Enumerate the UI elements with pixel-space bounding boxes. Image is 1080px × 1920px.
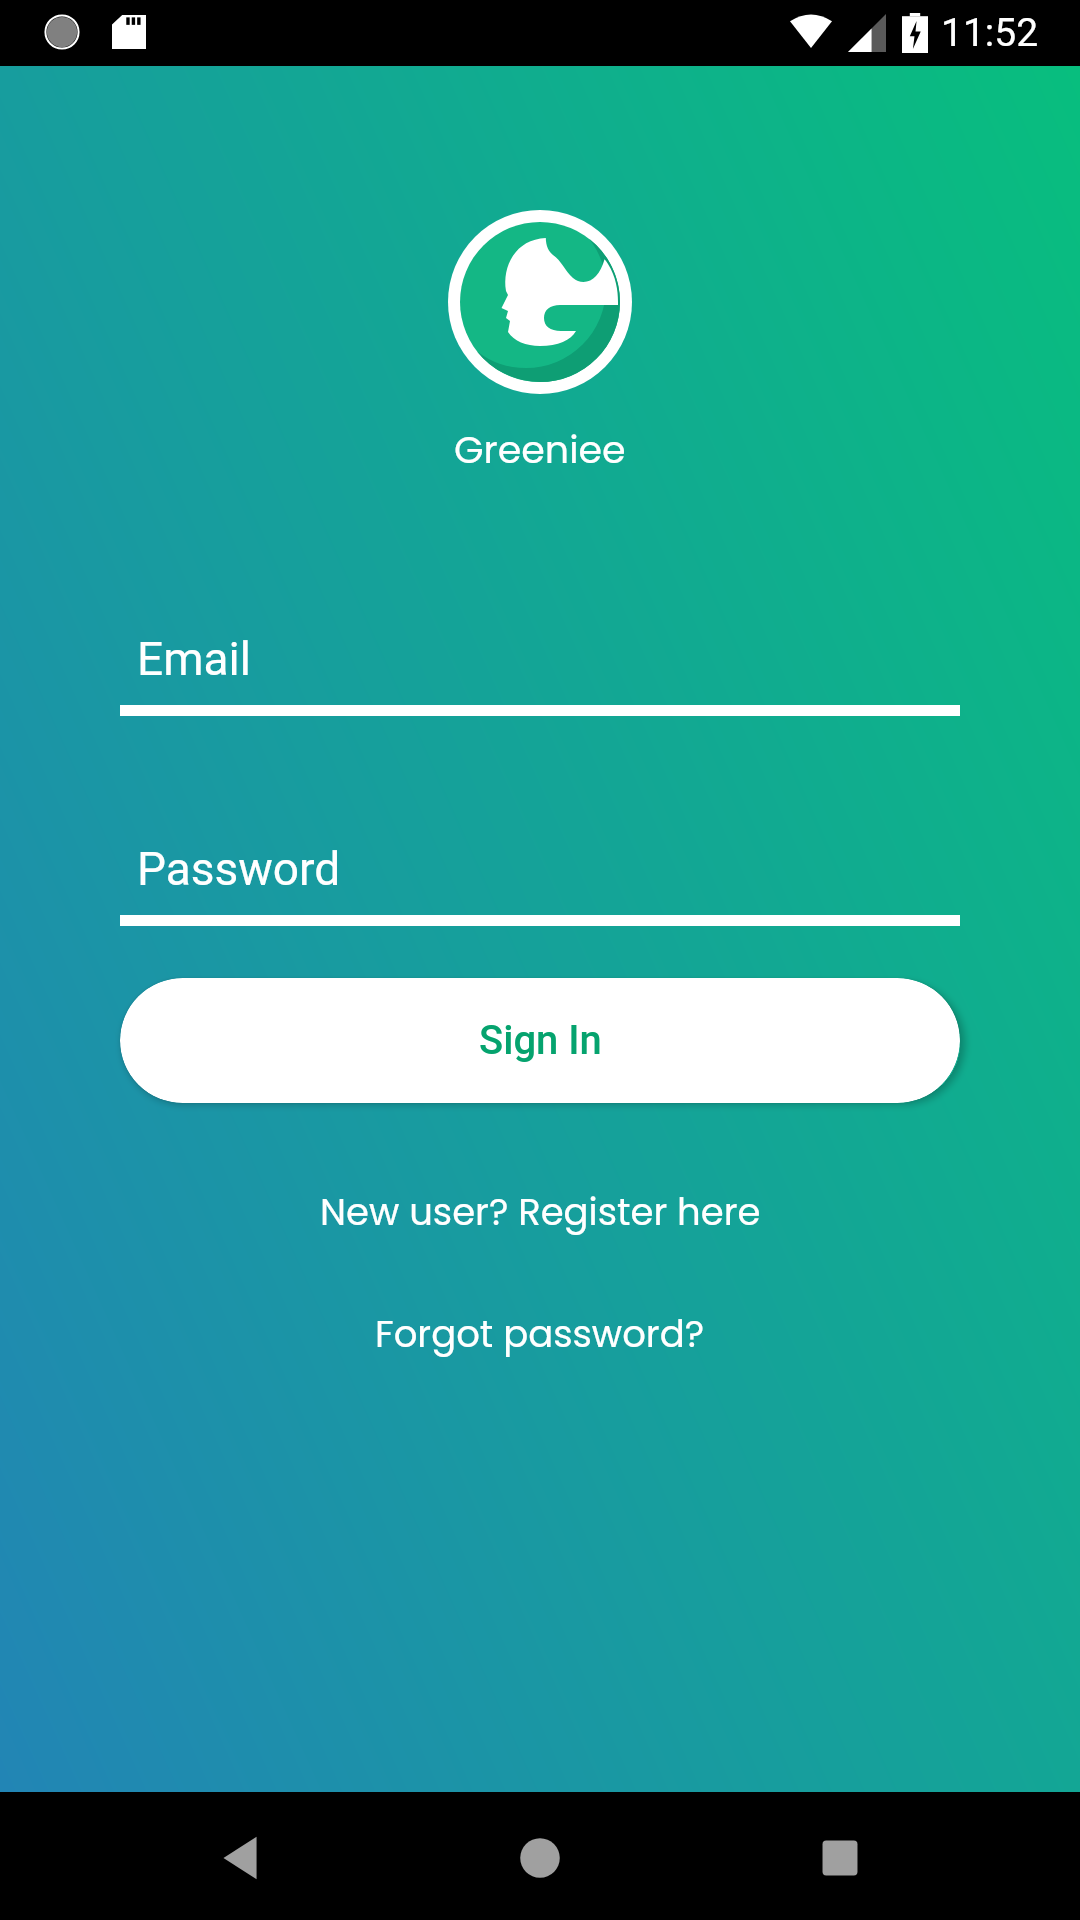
staticText: Password — [137, 842, 341, 896]
button[interactable]: Sign In — [120, 978, 960, 1103]
staticText: Sign In — [479, 1017, 602, 1064]
button[interactable]: Recent apps — [795, 1813, 885, 1903]
staticText: Email — [137, 632, 251, 686]
staticText: 11:52 — [941, 10, 1039, 56]
button[interactable]: Password — [120, 842, 960, 926]
button[interactable]: New user? Register here — [306, 1176, 775, 1248]
button[interactable]: Email — [120, 632, 960, 716]
staticText: Forgot password? — [375, 1308, 705, 1360]
staticText: New user? Register here — [320, 1186, 761, 1238]
button[interactable]: Back — [195, 1813, 285, 1903]
button[interactable]: Home — [495, 1813, 585, 1903]
button[interactable]: Forgot password? — [361, 1298, 719, 1370]
staticText: Greeniee — [454, 423, 626, 476]
